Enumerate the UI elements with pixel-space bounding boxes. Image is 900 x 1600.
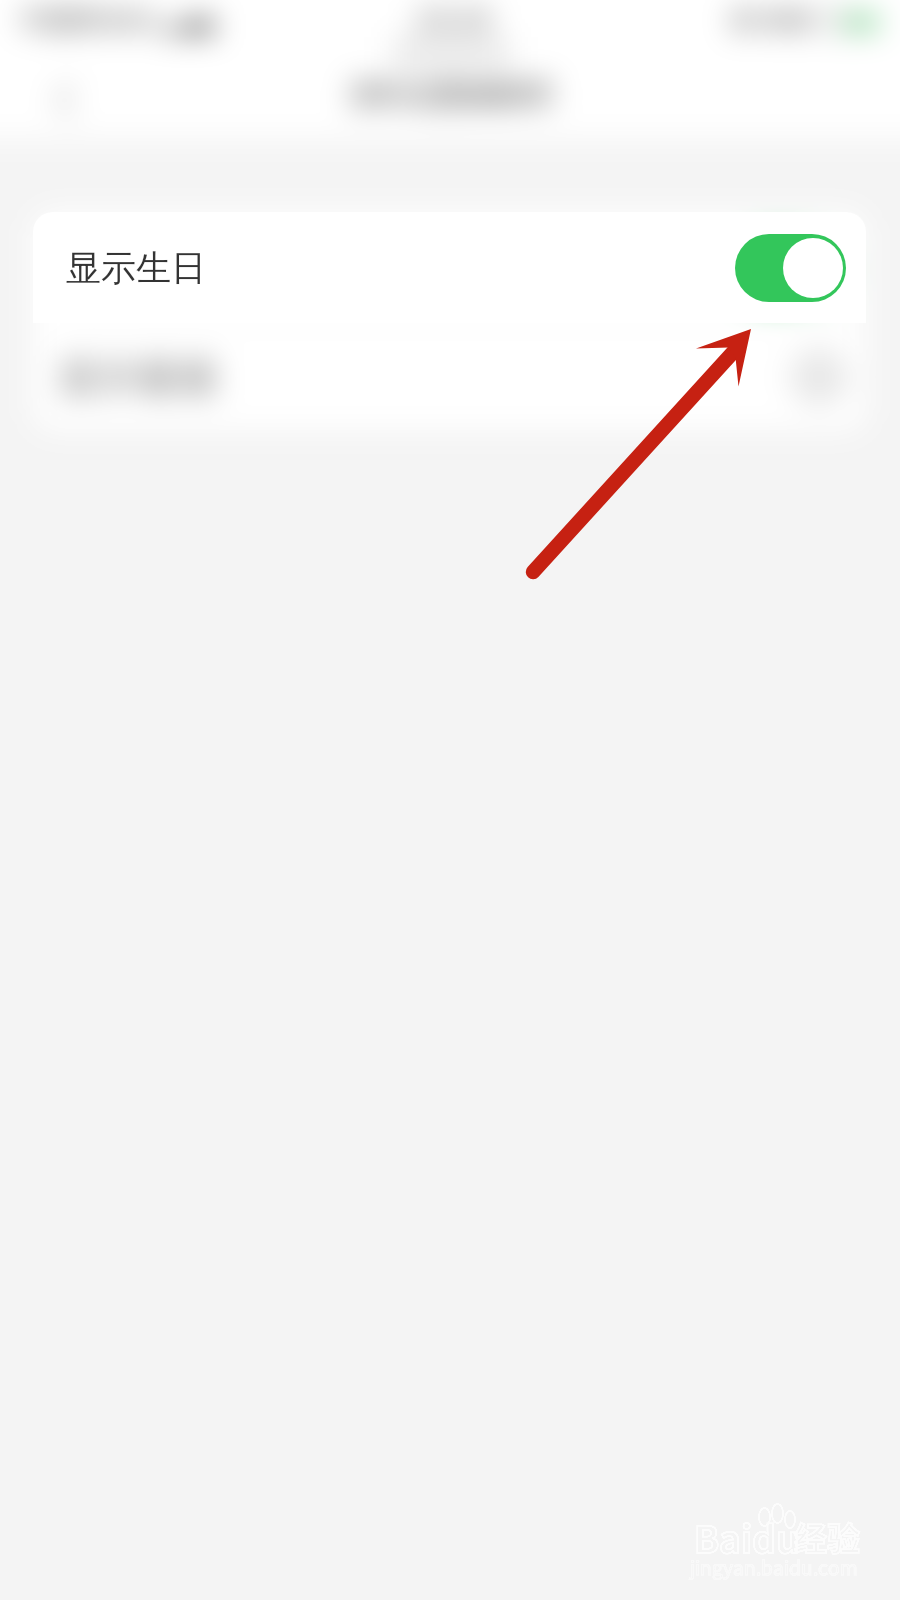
staticText: 显示生日 — [66, 246, 206, 290]
button[interactable]: 显示生日 — [33, 212, 866, 323]
button[interactable]: 显示星座 — [33, 323, 866, 430]
button[interactable]: 显示生日 switch, on — [735, 234, 846, 302]
